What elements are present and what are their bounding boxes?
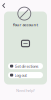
staticText: Your account	[12, 22, 38, 27]
button[interactable]: Back	[0, 0, 10, 11]
staticText: Log out	[15, 72, 27, 78]
button[interactable]: Log out	[8, 72, 43, 78]
staticText: Get directions	[15, 63, 39, 69]
staticText: Need help?	[16, 88, 35, 93]
button[interactable]: Get directions	[8, 63, 43, 69]
